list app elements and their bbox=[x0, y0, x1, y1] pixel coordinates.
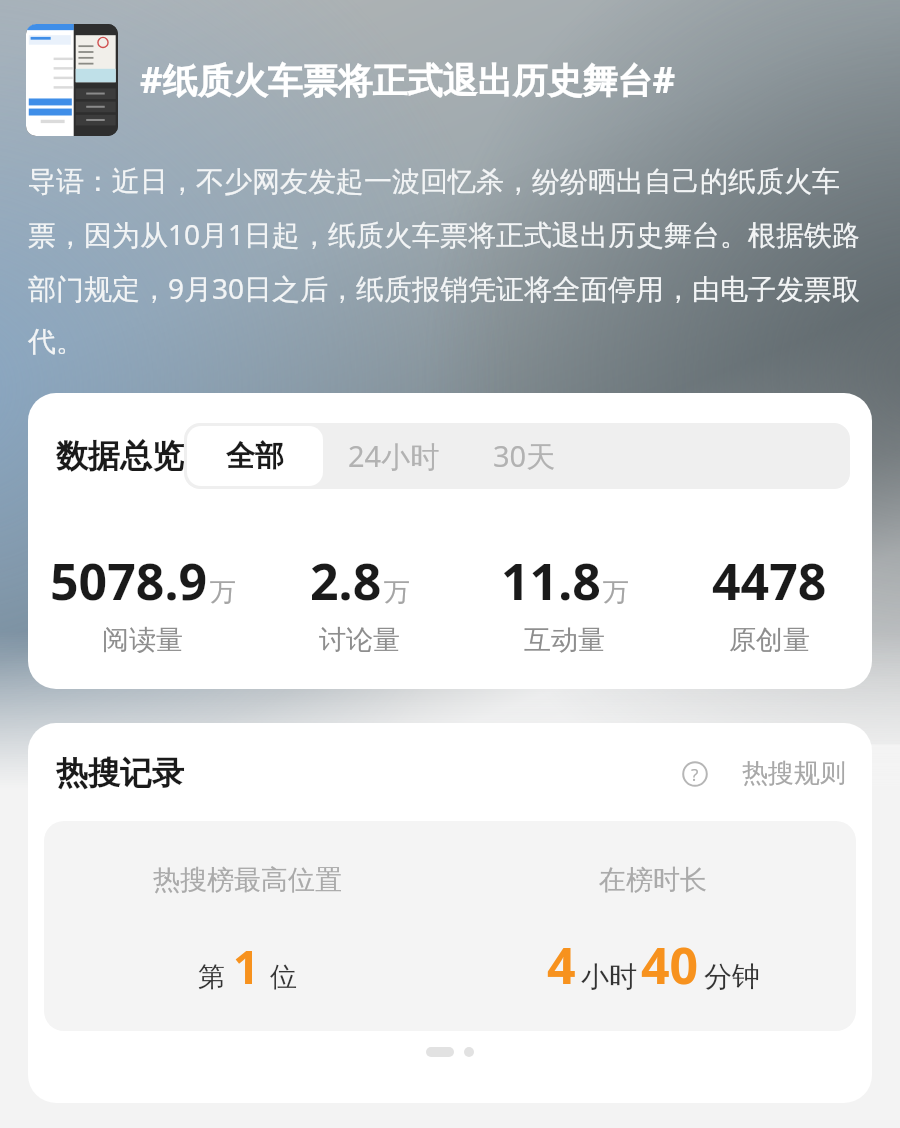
staticText: 30天 bbox=[493, 436, 556, 476]
staticText: 原创量 bbox=[729, 623, 810, 657]
staticText: 2.8 bbox=[310, 547, 382, 615]
staticText: 4 bbox=[547, 931, 576, 999]
button[interactable]: ? bbox=[682, 757, 846, 790]
staticText: 11.8 bbox=[501, 547, 601, 615]
button[interactable]: 4478 bbox=[667, 547, 872, 657]
staticText: 24小时 bbox=[348, 436, 440, 476]
staticText: 导语：近日，不少网友发起一波回忆杀，纷纷晒出自己的纸质火车票，因为从10月1日起… bbox=[28, 164, 878, 359]
staticText: 全部 bbox=[226, 438, 284, 475]
staticText: 在榜时长 bbox=[599, 863, 707, 897]
staticText: 位 bbox=[270, 960, 297, 994]
staticText: 40 bbox=[641, 931, 699, 999]
staticText: 阅读量 bbox=[102, 623, 183, 657]
staticText: 5078.9 bbox=[50, 547, 208, 615]
staticText: 讨论量 bbox=[319, 623, 400, 657]
button[interactable]: 全部 bbox=[187, 426, 323, 486]
staticText: 小时 bbox=[581, 959, 637, 994]
button[interactable]: 话题配图 bbox=[26, 24, 118, 136]
button[interactable]: 2.8 bbox=[257, 547, 462, 657]
staticText: 4478 bbox=[712, 547, 827, 615]
staticText: 第 bbox=[198, 960, 225, 994]
staticText: 万 bbox=[210, 576, 236, 609]
staticText: 热搜记录 bbox=[56, 753, 184, 793]
staticText: 分钟 bbox=[704, 959, 760, 994]
staticText: 互动量 bbox=[524, 623, 605, 657]
staticText: #纸质火车票将正式退出历史舞台# bbox=[140, 56, 676, 104]
button[interactable]: 11.8 bbox=[462, 547, 667, 657]
staticText: 1 bbox=[233, 935, 260, 998]
button[interactable]: 24小时 bbox=[326, 423, 462, 489]
staticText: 热搜榜最高位置 bbox=[153, 863, 342, 897]
staticText: 数据总览 bbox=[56, 436, 184, 476]
staticText: ? bbox=[691, 763, 699, 786]
button[interactable]: 30天 bbox=[462, 423, 586, 489]
staticText: 万 bbox=[384, 576, 410, 609]
button[interactable]: 5078.9 bbox=[28, 547, 257, 657]
staticText: 热搜规则 bbox=[742, 757, 846, 790]
staticText: 万 bbox=[603, 576, 629, 609]
